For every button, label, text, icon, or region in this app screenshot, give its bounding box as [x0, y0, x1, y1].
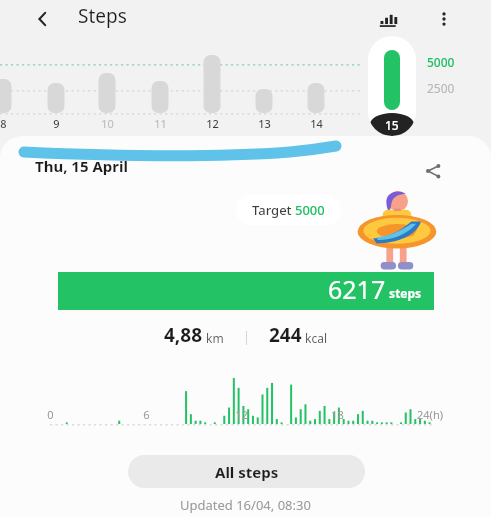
staticText: 12 — [206, 116, 219, 131]
staticText: All steps — [215, 462, 279, 482]
staticText: 5000 — [295, 201, 325, 219]
staticText: 18 — [331, 407, 344, 422]
staticText: 9 — [53, 116, 60, 131]
staticText: 10 — [101, 116, 114, 131]
button[interactable]: All steps — [128, 455, 365, 488]
staticText: 15 — [385, 117, 399, 133]
staticText: 2500 — [427, 80, 455, 96]
staticText: 6 — [143, 407, 150, 422]
staticText: 8 — [0, 116, 7, 131]
staticText: 4,88 — [164, 322, 203, 348]
staticText: Target — [252, 201, 295, 219]
staticText: kcal — [302, 330, 328, 346]
staticText: 6217 — [328, 272, 386, 304]
staticText: km — [203, 330, 224, 346]
button[interactable]: Target — [236, 195, 341, 225]
staticText: 0 — [47, 407, 54, 422]
staticText: 14 — [310, 116, 323, 131]
button[interactable]: Back — [28, 4, 58, 34]
staticText: Thu, 15 April — [35, 156, 128, 176]
staticText: 11 — [154, 116, 167, 131]
button[interactable]: Chart — [372, 3, 404, 35]
button[interactable]: Share — [414, 152, 452, 190]
staticText: 5000 — [427, 54, 455, 70]
staticText: 13 — [258, 116, 271, 131]
button[interactable]: 6217 — [58, 272, 434, 310]
staticText: Updated 16/04, 08:30 — [180, 496, 311, 514]
staticText: 12 — [235, 407, 248, 422]
button[interactable]: More options — [428, 3, 460, 35]
button[interactable]: Selected day 15 — [368, 36, 416, 136]
staticText: Steps — [78, 3, 127, 29]
staticText: 244 — [269, 322, 302, 348]
staticText: 24(h) — [417, 407, 443, 422]
staticText: steps — [386, 285, 422, 301]
